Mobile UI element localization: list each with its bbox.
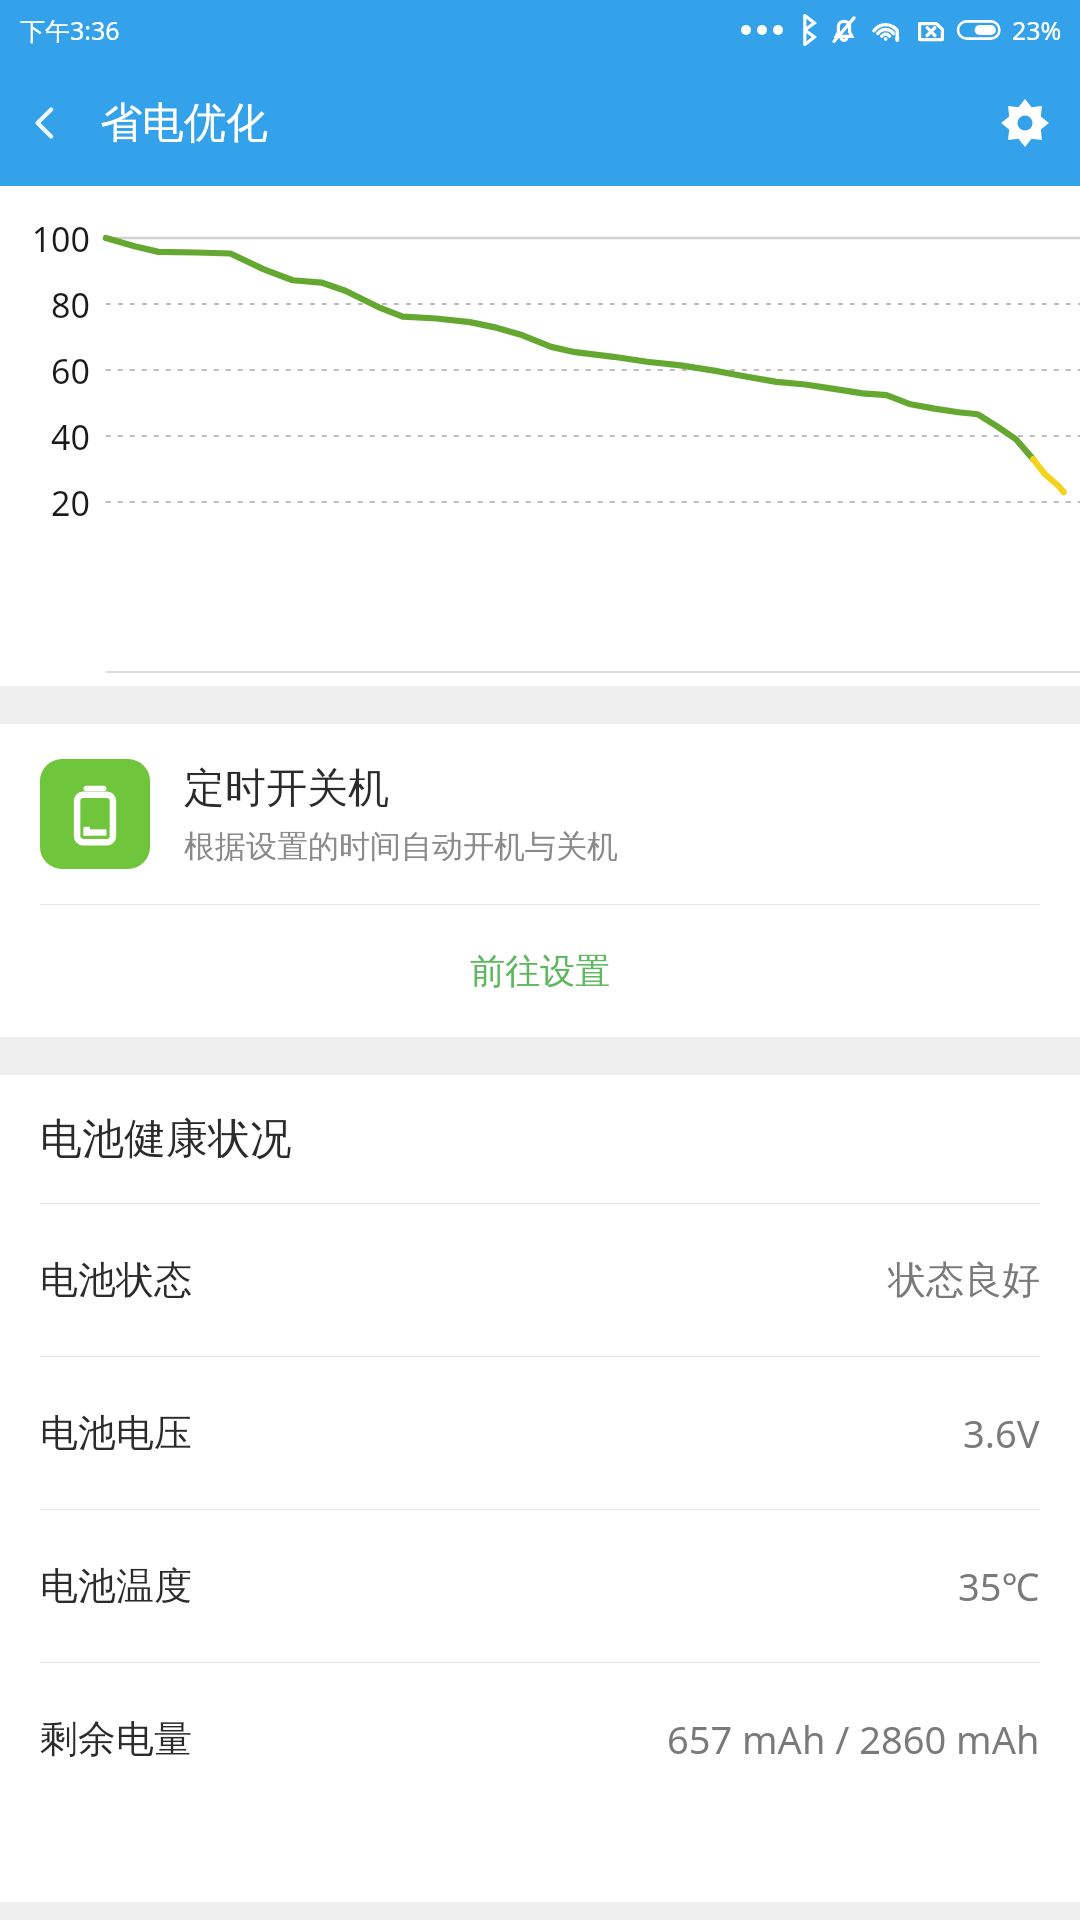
staticText: 电池温度 bbox=[40, 1562, 192, 1610]
button[interactable]: 电池温度 bbox=[0, 1510, 1080, 1662]
staticText: 3.6V bbox=[963, 1407, 1040, 1459]
button[interactable]: 电池状态 bbox=[0, 1204, 1080, 1356]
staticText: 40 bbox=[0, 414, 90, 460]
staticText: 省电优化 bbox=[100, 97, 268, 150]
staticText: 电池电压 bbox=[40, 1409, 192, 1457]
button[interactable]: 前往设置 bbox=[0, 905, 1080, 1037]
button[interactable]: 剩余电量 bbox=[0, 1663, 1080, 1815]
staticText: 剩余电量 bbox=[40, 1715, 192, 1763]
staticText: 35℃ bbox=[958, 1560, 1040, 1612]
button[interactable]: Settings bbox=[970, 68, 1080, 178]
staticText: 80 bbox=[0, 282, 90, 328]
staticText: 电池健康状况 bbox=[40, 1113, 292, 1166]
staticText: 60 bbox=[0, 348, 90, 394]
staticText: 下午3:36 bbox=[20, 13, 120, 47]
staticText: 20 bbox=[0, 480, 90, 526]
staticText: 根据设置的时间自动开机与关机 bbox=[184, 827, 618, 866]
staticText: 前往设置 bbox=[470, 949, 610, 993]
button[interactable]: Back bbox=[0, 78, 90, 168]
staticText: 23% bbox=[1012, 13, 1062, 47]
staticText: 定时开关机 bbox=[184, 763, 389, 815]
button[interactable]: 电池电压 bbox=[0, 1357, 1080, 1509]
staticText: 657 mAh / 2860 mAh bbox=[667, 1713, 1040, 1765]
staticText: 电池状态 bbox=[40, 1256, 192, 1304]
staticText: 100 bbox=[0, 216, 90, 262]
button[interactable]: 定时开关机 bbox=[0, 724, 1080, 904]
staticText: 状态良好 bbox=[888, 1256, 1040, 1304]
